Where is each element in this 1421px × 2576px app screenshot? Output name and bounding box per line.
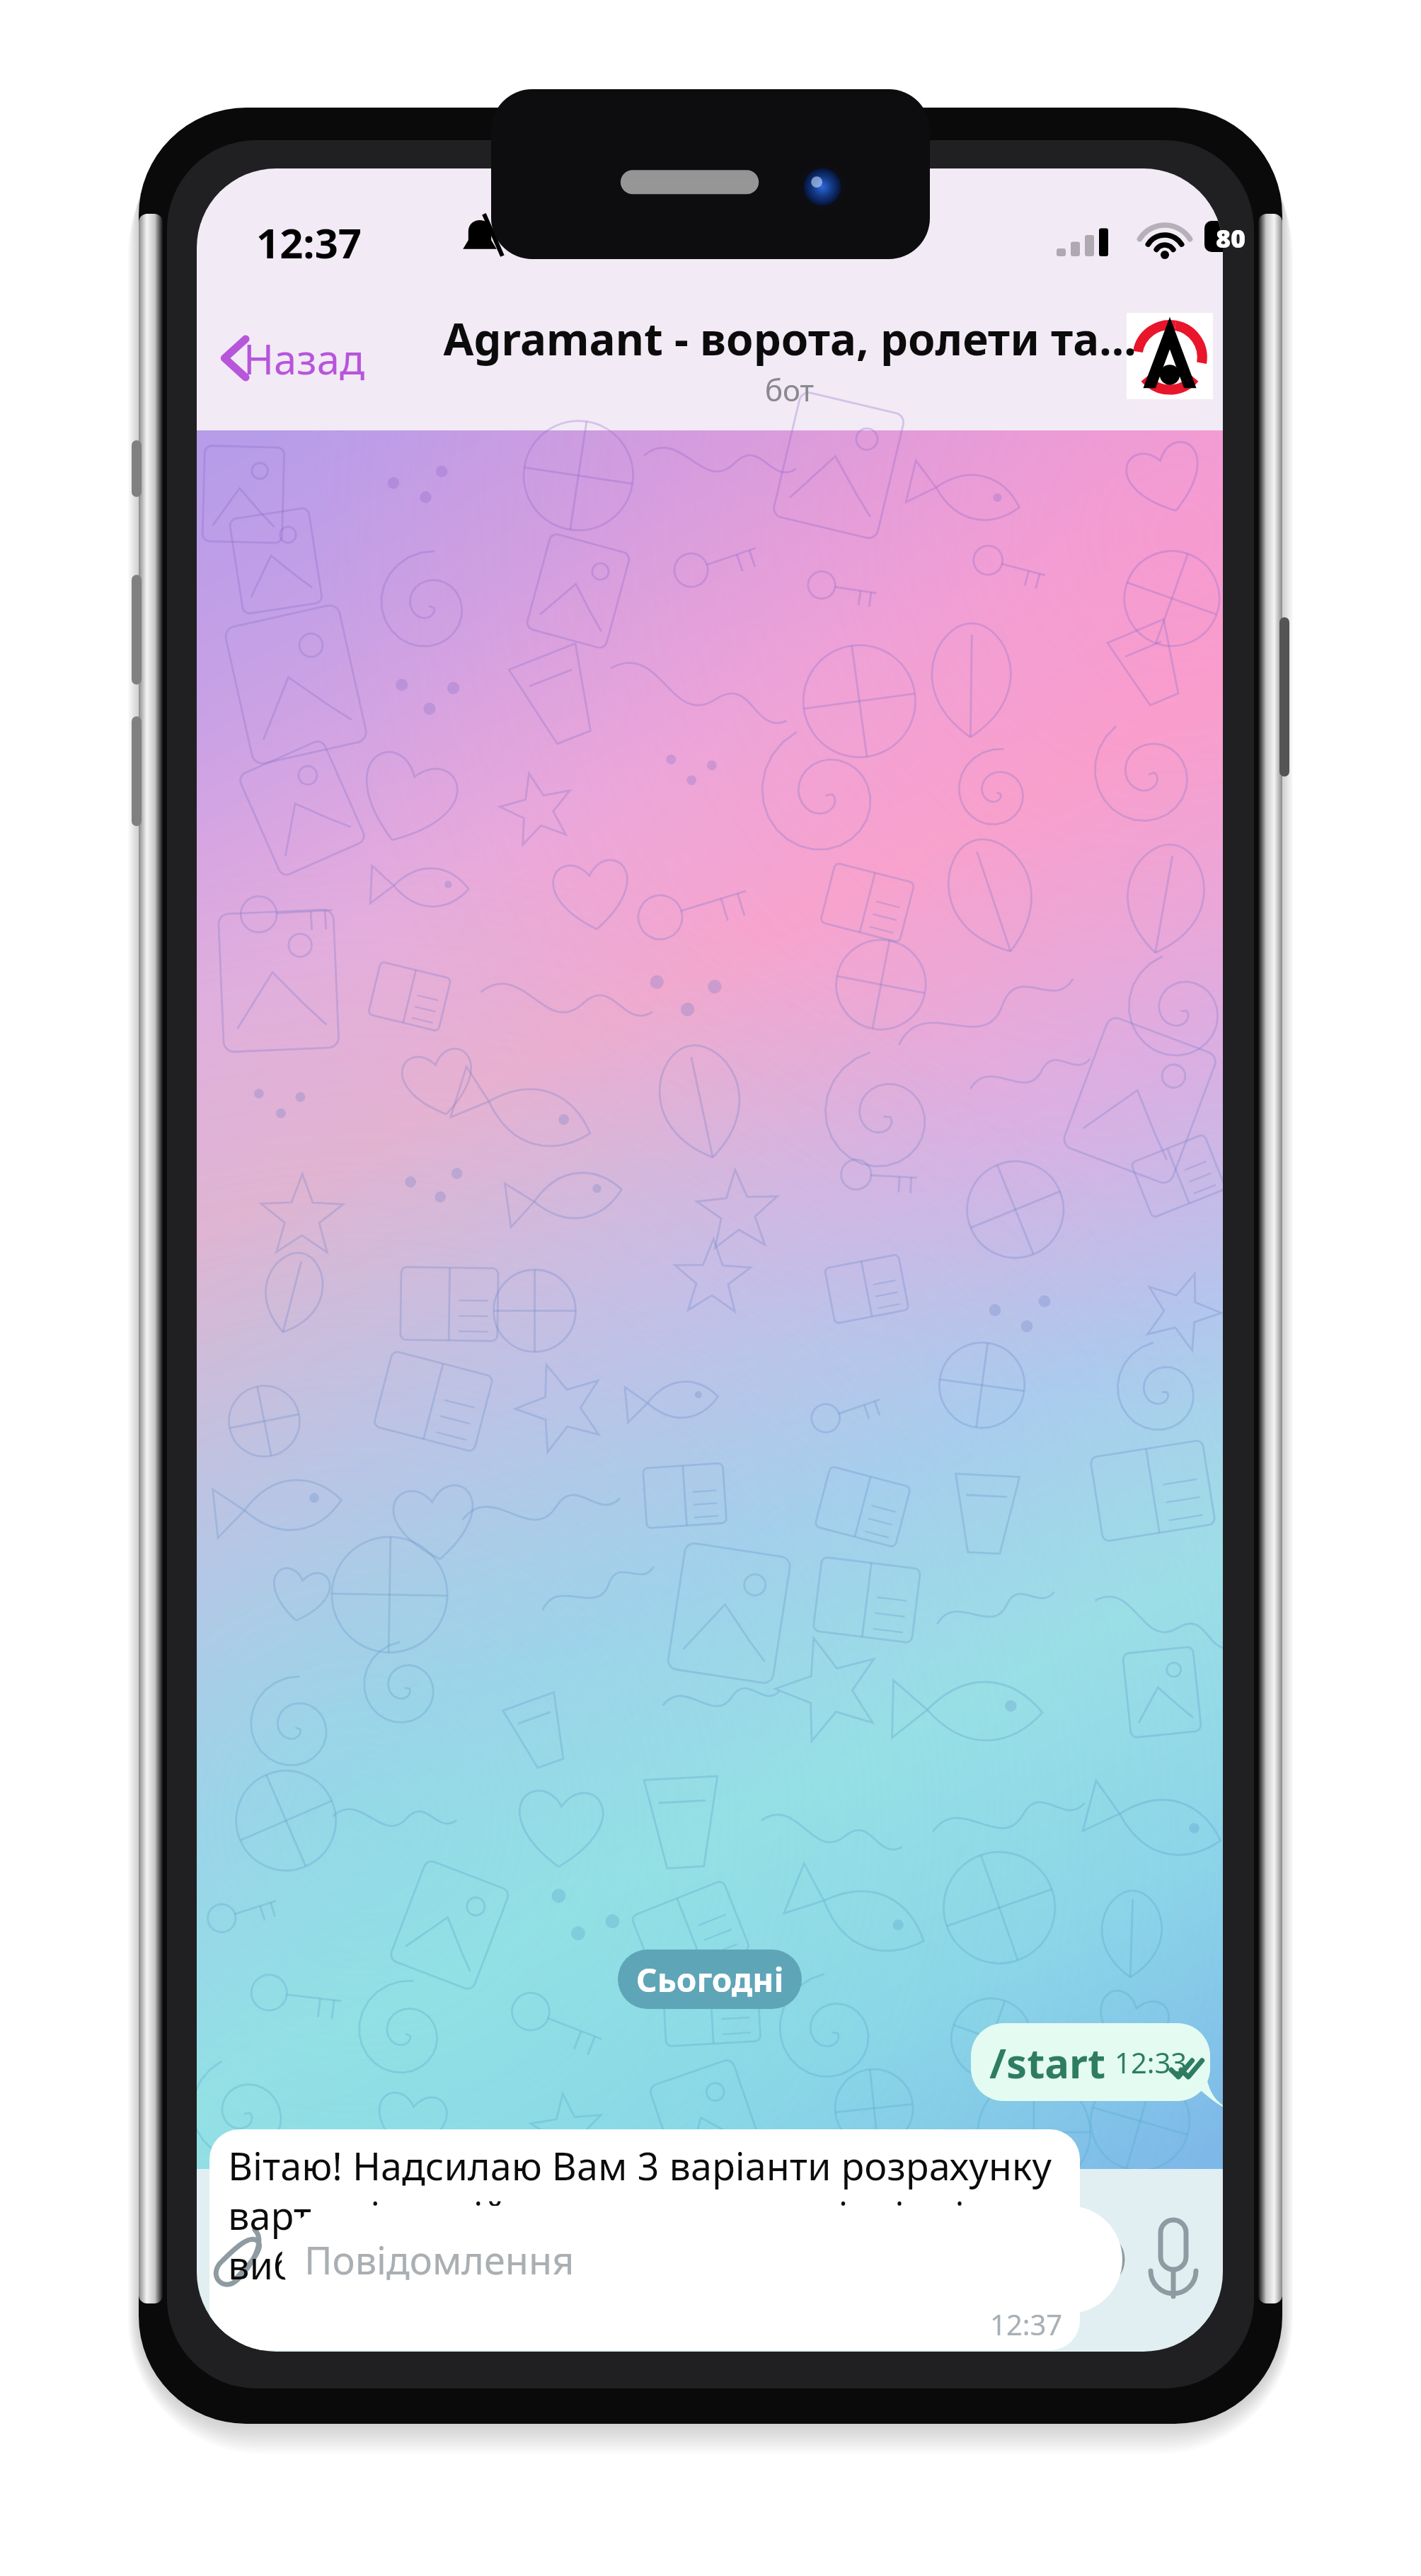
button[interactable]: Agramant - ворота, ролети та... (378, 307, 1202, 411)
staticText: Назад (243, 331, 365, 387)
staticText: Agramant - ворота, ролети та... (443, 309, 1137, 368)
staticText: Сьогодні (636, 1957, 784, 2002)
staticText: /start (989, 2034, 1106, 2090)
staticText: бот (765, 370, 815, 410)
staticText: 12:37 (256, 214, 362, 270)
staticText: Вітаю! Надсилаю Вам 3 варіанти розрахунк… (228, 2139, 1067, 2291)
button[interactable]: Сьогодні (618, 1950, 802, 2009)
staticText: Повідомлення (304, 2233, 575, 2286)
button[interactable]: Назад (207, 319, 374, 398)
staticText: 12:33 (1115, 2043, 1187, 2081)
button[interactable]: Повідомлення (282, 2206, 1122, 2313)
button[interactable]: /start (971, 2023, 1210, 2101)
button[interactable]: Прикріпити файл (202, 2209, 280, 2311)
button[interactable]: Профіль чату (1127, 313, 1213, 399)
staticText: 80 (1216, 221, 1246, 252)
button[interactable]: Стікери (1053, 2209, 1139, 2311)
button[interactable]: Голосове повідомлення (1131, 2209, 1217, 2311)
staticText: 12:37 (990, 2305, 1063, 2343)
button[interactable]: Вітаю! Надсилаю Вам 3 варіанти розрахунк… (209, 2129, 1080, 2350)
